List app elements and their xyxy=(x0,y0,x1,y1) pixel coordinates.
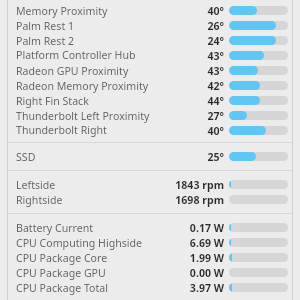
button[interactable]: Memory Proximity xyxy=(8,3,292,18)
staticText: Palm Rest 1 xyxy=(16,19,75,33)
staticText: Right Fin Stack xyxy=(16,94,89,108)
staticText: Palm Rest 2 xyxy=(16,34,75,48)
staticText: 27° xyxy=(150,109,224,123)
staticText: 0.00 W xyxy=(150,266,224,280)
staticText: Rightside xyxy=(16,193,63,207)
button[interactable]: Palm Rest 1 xyxy=(8,18,292,33)
button[interactable]: SSD xyxy=(8,149,292,164)
button[interactable]: Platform Controller Hub Die xyxy=(8,48,292,63)
staticText: Thunderbolt Left Proximity xyxy=(16,109,150,123)
staticText: 26° xyxy=(150,19,224,33)
staticText: 43° xyxy=(150,49,224,63)
staticText: 44° xyxy=(150,94,224,108)
staticText: 6.69 W xyxy=(150,236,224,250)
staticText: 24° xyxy=(150,34,224,48)
staticText: 1.99 W xyxy=(150,251,224,265)
button[interactable]: Thunderbolt Right Proximity xyxy=(8,123,292,138)
button[interactable]: Battery Current xyxy=(8,220,292,235)
staticText: Radeon GPU Proximity xyxy=(16,64,129,78)
button[interactable]: Radeon GPU Proximity xyxy=(8,63,292,78)
staticText: CPU Computing Highside xyxy=(16,236,142,250)
staticText: 43° xyxy=(150,64,224,78)
staticText: SSD xyxy=(16,150,36,164)
button[interactable]: Leftside xyxy=(8,177,292,192)
staticText: 42° xyxy=(150,79,224,93)
button[interactable]: CPU Package GPU xyxy=(8,265,292,280)
button[interactable]: Thunderbolt Left Proximity xyxy=(8,108,292,123)
staticText: Platform Controller Hub Die xyxy=(16,48,150,63)
staticText: Leftside xyxy=(16,178,56,192)
staticText: CPU Package Total xyxy=(16,281,108,295)
staticText: CPU Package GPU xyxy=(16,266,106,280)
button[interactable]: CPU Package Core xyxy=(8,250,292,265)
staticText: 0.17 W xyxy=(150,221,224,235)
staticText: 1698 rpm xyxy=(150,193,224,207)
staticText: 40° xyxy=(150,124,224,138)
staticText: Thunderbolt Right Proximity xyxy=(16,123,150,138)
staticText: CPU Package Core xyxy=(16,251,108,265)
staticText: 1843 rpm xyxy=(150,178,224,192)
staticText: 25° xyxy=(150,150,224,164)
button[interactable]: Rightside xyxy=(8,192,292,207)
button[interactable]: Radeon Memory Proximity xyxy=(8,78,292,93)
button[interactable]: Right Fin Stack xyxy=(8,93,292,108)
staticText: 40° xyxy=(150,4,224,18)
staticText: Battery Current xyxy=(16,221,94,235)
button[interactable]: Palm Rest 2 xyxy=(8,33,292,48)
button[interactable]: CPU Computing Highside xyxy=(8,235,292,250)
staticText: 3.97 W xyxy=(150,281,224,295)
staticText: Memory Proximity xyxy=(16,4,108,18)
staticText: Radeon Memory Proximity xyxy=(16,79,149,93)
button[interactable]: CPU Package Total xyxy=(8,280,292,295)
